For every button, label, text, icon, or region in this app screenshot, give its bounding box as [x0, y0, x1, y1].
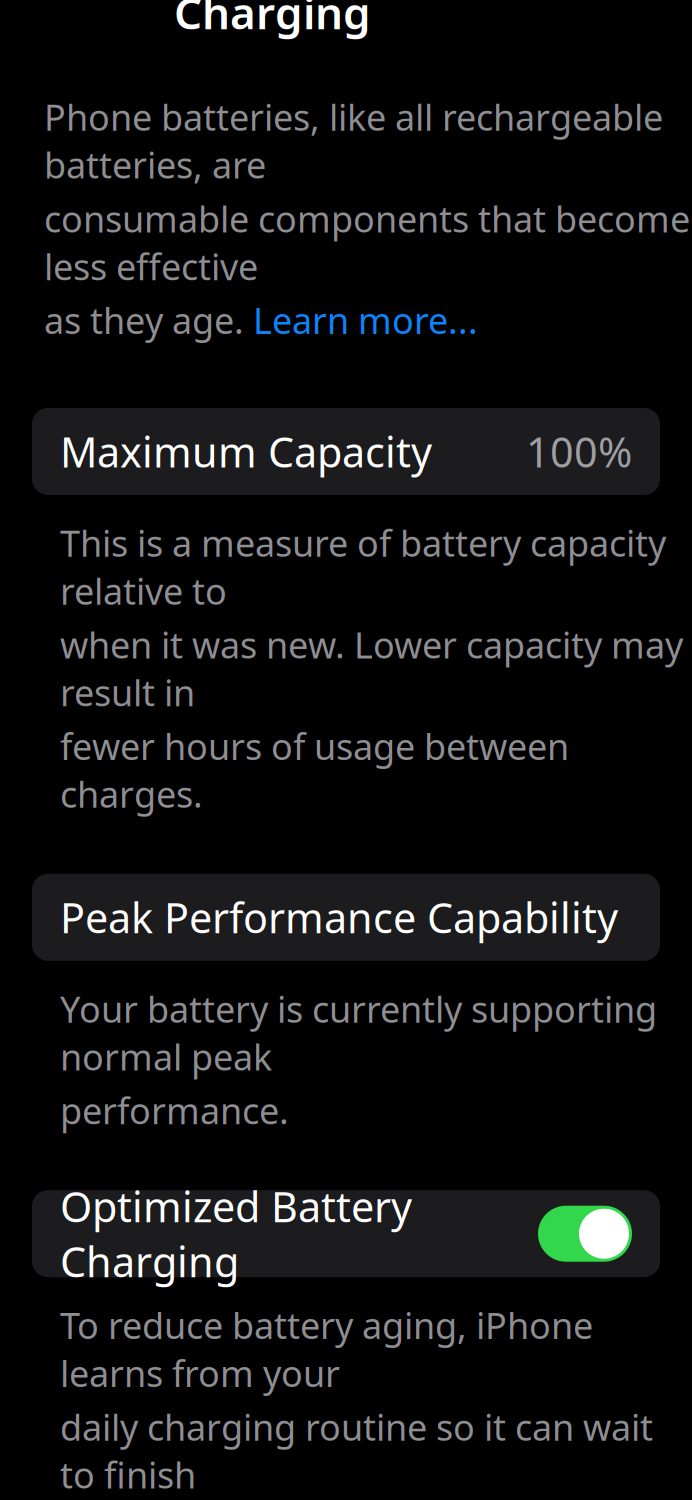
button[interactable]: Optimized Battery Charging — [32, 1190, 660, 1277]
staticText: Maximum Capacity — [60, 424, 432, 479]
staticText: daily charging routine so it can wait to… — [60, 1403, 653, 1498]
staticText: Phone batteries, like all rechargeable b… — [44, 93, 663, 188]
button[interactable]: Peak Performance Capability — [32, 874, 660, 961]
button[interactable]: Maximum Capacity — [32, 408, 660, 495]
staticText: 100% — [526, 424, 632, 479]
button[interactable]: Learn more... — [253, 296, 478, 344]
staticText: when it was new. Lower capacity may resu… — [60, 621, 683, 716]
staticText: Your battery is currently supporting nor… — [60, 985, 657, 1080]
staticText: Optimized Battery Charging — [60, 1179, 412, 1289]
staticText: Peak Performance Capability — [60, 890, 618, 945]
staticText: Battery Health & Charging — [174, 0, 532, 41]
staticText: performance. — [60, 1086, 289, 1134]
staticText: This is a measure of battery capacity re… — [60, 519, 666, 615]
staticText: fewer hours of usage between charges. — [60, 722, 569, 818]
staticText: To reduce battery aging, iPhone learns f… — [60, 1301, 593, 1397]
staticText: as they age. — [44, 296, 253, 344]
staticText: Learn more... — [253, 296, 478, 344]
staticText: consumable components that become less e… — [44, 194, 690, 290]
